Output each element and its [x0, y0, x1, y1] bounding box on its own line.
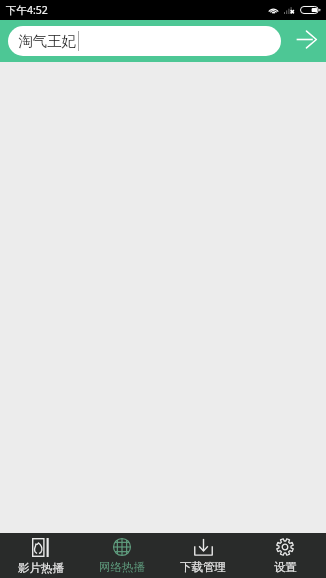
- button[interactable]: 网络热播: [81, 533, 162, 578]
- button[interactable]: 淘气王妃: [8, 26, 281, 56]
- staticText: 淘气王妃: [18, 32, 76, 50]
- button[interactable]: 下载管理: [162, 533, 244, 578]
- staticText: 影片热播: [18, 561, 64, 575]
- staticText: 网络热播: [99, 560, 145, 574]
- staticText: 设置: [274, 560, 297, 574]
- button[interactable]: Search: [281, 20, 326, 62]
- button[interactable]: 影片热播: [0, 533, 81, 578]
- staticText: 下载管理: [180, 560, 226, 574]
- staticText: 下午4:52: [6, 3, 48, 17]
- button[interactable]: 设置: [244, 533, 326, 578]
